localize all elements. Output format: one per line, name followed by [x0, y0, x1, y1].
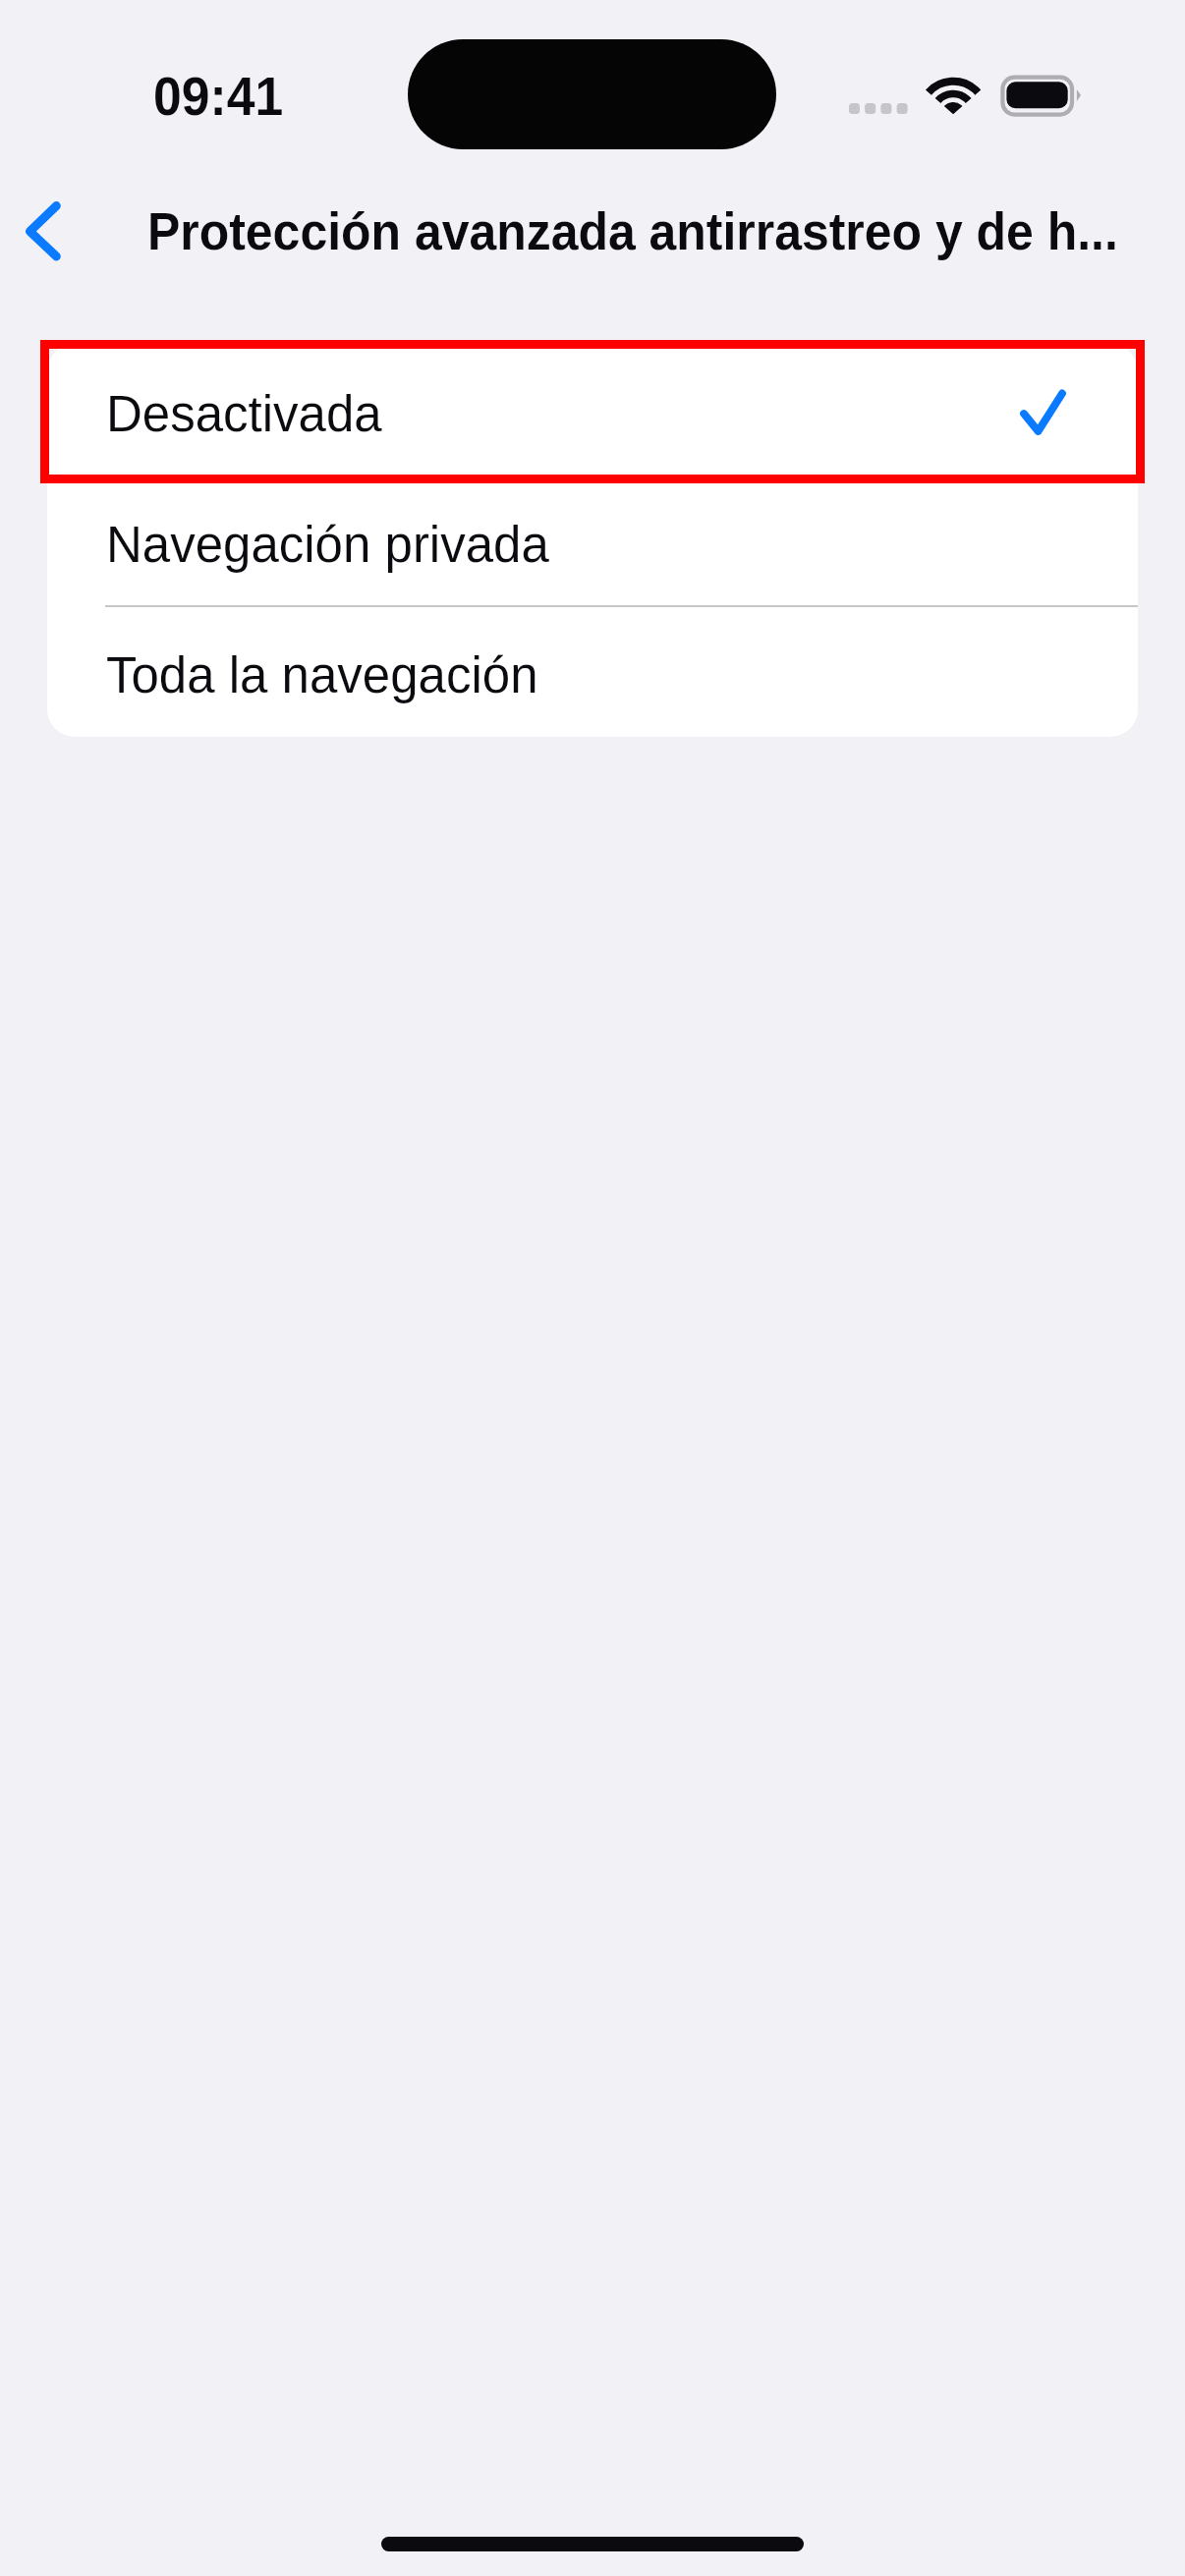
other: Selected	[1022, 390, 1066, 433]
other: Cellular signal	[849, 103, 909, 115]
other: Wi-Fi	[922, 71, 985, 120]
button[interactable]: Back	[6, 183, 100, 277]
button[interactable]: Toda la navegación	[47, 605, 1138, 736]
staticText: Desactivada	[106, 386, 382, 442]
staticText: Protección avanzada antirrastreo y de h.…	[147, 202, 1118, 260]
button[interactable]: Desactivada	[47, 344, 1138, 475]
staticText: Toda la navegación	[106, 647, 538, 703]
staticText: Navegación privada	[106, 517, 549, 573]
staticText: 09:41	[153, 65, 284, 127]
button[interactable]: Navegación privada	[47, 475, 1138, 605]
other: Battery	[998, 73, 1083, 118]
